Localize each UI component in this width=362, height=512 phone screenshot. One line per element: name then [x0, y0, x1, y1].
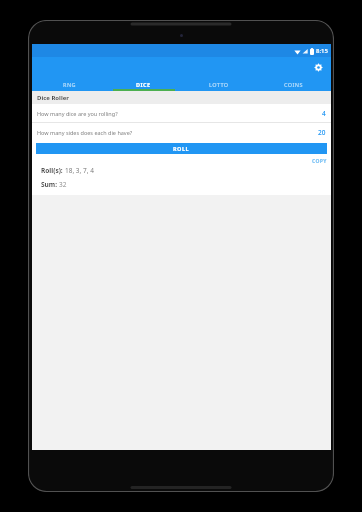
- staticText: DICE: [136, 81, 151, 88]
- staticText: Sum:: [41, 180, 59, 189]
- staticText: Roll(s):: [41, 166, 65, 175]
- staticText: 18, 3, 7, 4: [65, 166, 94, 175]
- staticText: 20: [318, 128, 326, 137]
- button[interactable]: COPY: [312, 158, 327, 165]
- button[interactable]: LOTTO: [181, 77, 256, 91]
- staticText: How many sides does each die have?: [37, 129, 318, 136]
- staticText: How many dice are you rolling?: [37, 110, 322, 117]
- staticText: LOTTO: [209, 81, 229, 88]
- staticText: 32: [59, 180, 67, 189]
- button[interactable]: ROLL: [36, 143, 327, 154]
- staticText: RNG: [63, 81, 76, 88]
- staticText: COINS: [284, 81, 303, 88]
- button[interactable]: COINS: [256, 77, 331, 91]
- staticText: COPY: [312, 158, 327, 165]
- button[interactable]: Settings: [310, 59, 326, 75]
- button[interactable]: DICE: [106, 77, 181, 91]
- button[interactable]: How many sides does each die have?: [32, 123, 331, 141]
- staticText: 8:15: [316, 47, 328, 55]
- staticText: 4: [322, 109, 326, 118]
- staticText: Dice Roller: [37, 94, 69, 102]
- button[interactable]: How many dice are you rolling?: [32, 104, 331, 122]
- button[interactable]: RNG: [32, 77, 106, 91]
- staticText: ROLL: [173, 145, 190, 152]
